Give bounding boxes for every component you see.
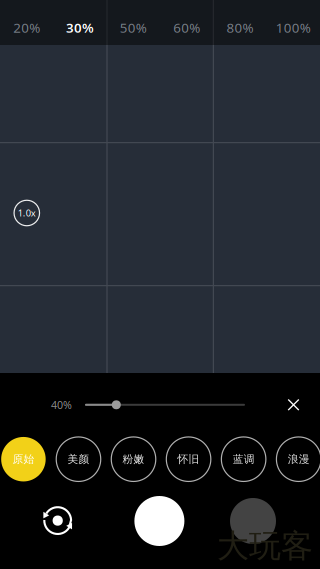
button[interactable]: Close bbox=[280, 392, 306, 418]
button[interactable]: 100% bbox=[267, 0, 320, 45]
staticText: 100% bbox=[276, 19, 311, 36]
button[interactable]: 1.0x bbox=[13, 199, 41, 227]
button[interactable]: Take photo bbox=[134, 496, 184, 546]
button[interactable]: 50% bbox=[107, 0, 160, 45]
staticText: 粉嫩 bbox=[122, 453, 144, 466]
staticText: 原始 bbox=[12, 453, 34, 466]
staticText: 美颜 bbox=[67, 453, 89, 466]
button[interactable]: 怀旧 bbox=[166, 437, 211, 481]
staticText: 怀旧 bbox=[178, 453, 200, 466]
button[interactable]: 30% bbox=[53, 0, 107, 45]
button[interactable]: 原始 bbox=[1, 437, 46, 481]
staticText: 80% bbox=[226, 19, 253, 36]
button[interactable]: 美颜 bbox=[56, 437, 101, 481]
button[interactable]: 浪漫 bbox=[276, 437, 320, 481]
staticText: 1.0x bbox=[18, 207, 36, 219]
button[interactable]: 20% bbox=[0, 0, 53, 45]
staticText: 30% bbox=[66, 19, 94, 36]
staticText: 20% bbox=[13, 19, 40, 36]
staticText: 50% bbox=[120, 19, 147, 36]
staticText: 浪漫 bbox=[288, 453, 310, 466]
button[interactable]: 80% bbox=[213, 0, 267, 45]
button[interactable]: Switch camera bbox=[40, 503, 76, 539]
button[interactable]: 60% bbox=[160, 0, 213, 45]
button[interactable]: 粉嫩 bbox=[111, 437, 156, 481]
button[interactable]: Photo library bbox=[230, 498, 276, 544]
staticText: 60% bbox=[173, 19, 200, 36]
staticText: 蓝调 bbox=[233, 453, 255, 466]
staticText: 大玩客 bbox=[217, 526, 313, 566]
button[interactable]: 蓝调 bbox=[221, 437, 266, 481]
staticText: 40% bbox=[51, 398, 72, 412]
